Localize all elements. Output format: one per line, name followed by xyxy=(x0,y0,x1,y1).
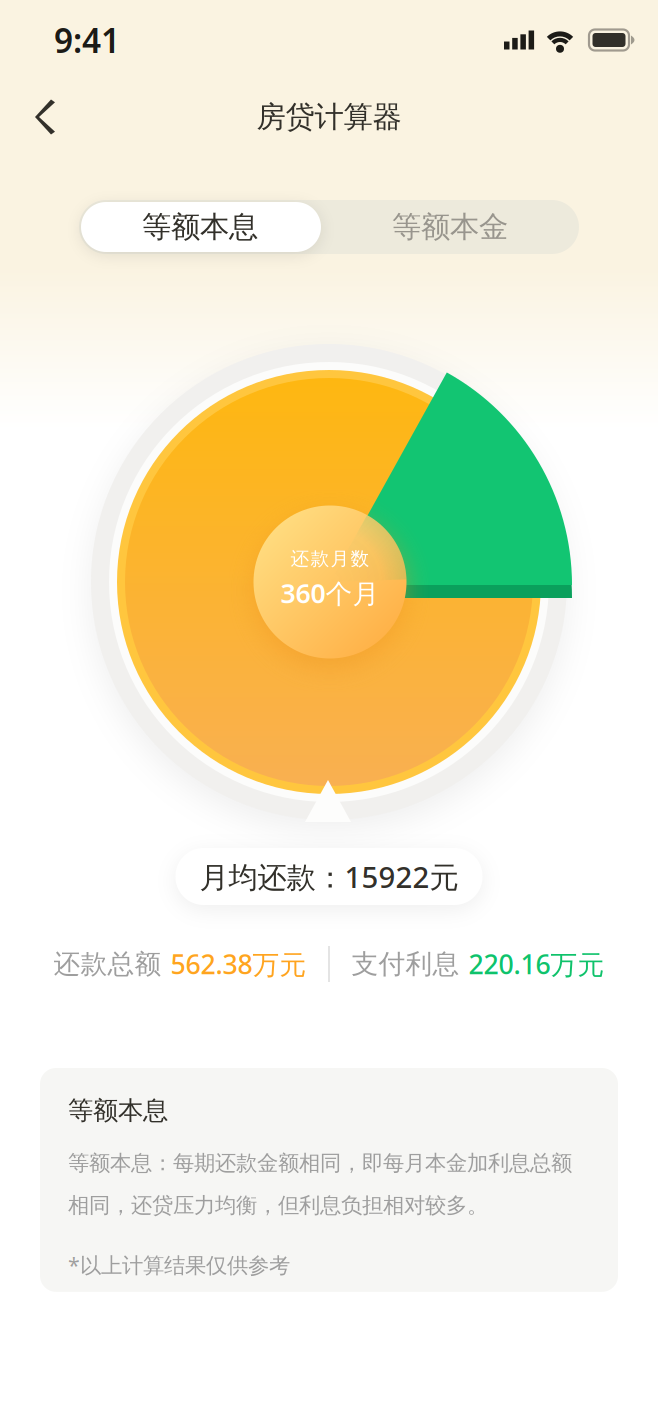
staticText: 360个月 xyxy=(280,575,379,611)
staticText: 房贷计算器 xyxy=(256,99,401,135)
staticText: 9:41 xyxy=(54,18,120,62)
staticText: 等额本金 xyxy=(392,209,508,245)
staticText: 562.38万元 xyxy=(170,946,306,982)
staticText: 还款月数 xyxy=(290,547,369,570)
staticText: 等额本息 xyxy=(142,209,258,245)
staticText: 220.16万元 xyxy=(468,946,604,982)
staticText: 支付利息 xyxy=(351,948,459,980)
staticText: *以上计算结果仅供参考 xyxy=(68,1250,290,1279)
staticText: 等额本息：每期还款金额相同，即每月本金加利息总额 xyxy=(68,1150,572,1176)
staticText: 相同，还贷压力均衡，但利息负担相对较多。 xyxy=(68,1192,488,1218)
staticText: 等额本息 xyxy=(68,1095,168,1126)
staticText: 还款总额 xyxy=(53,948,161,980)
staticText: 月均还款：15922元 xyxy=(199,857,458,896)
